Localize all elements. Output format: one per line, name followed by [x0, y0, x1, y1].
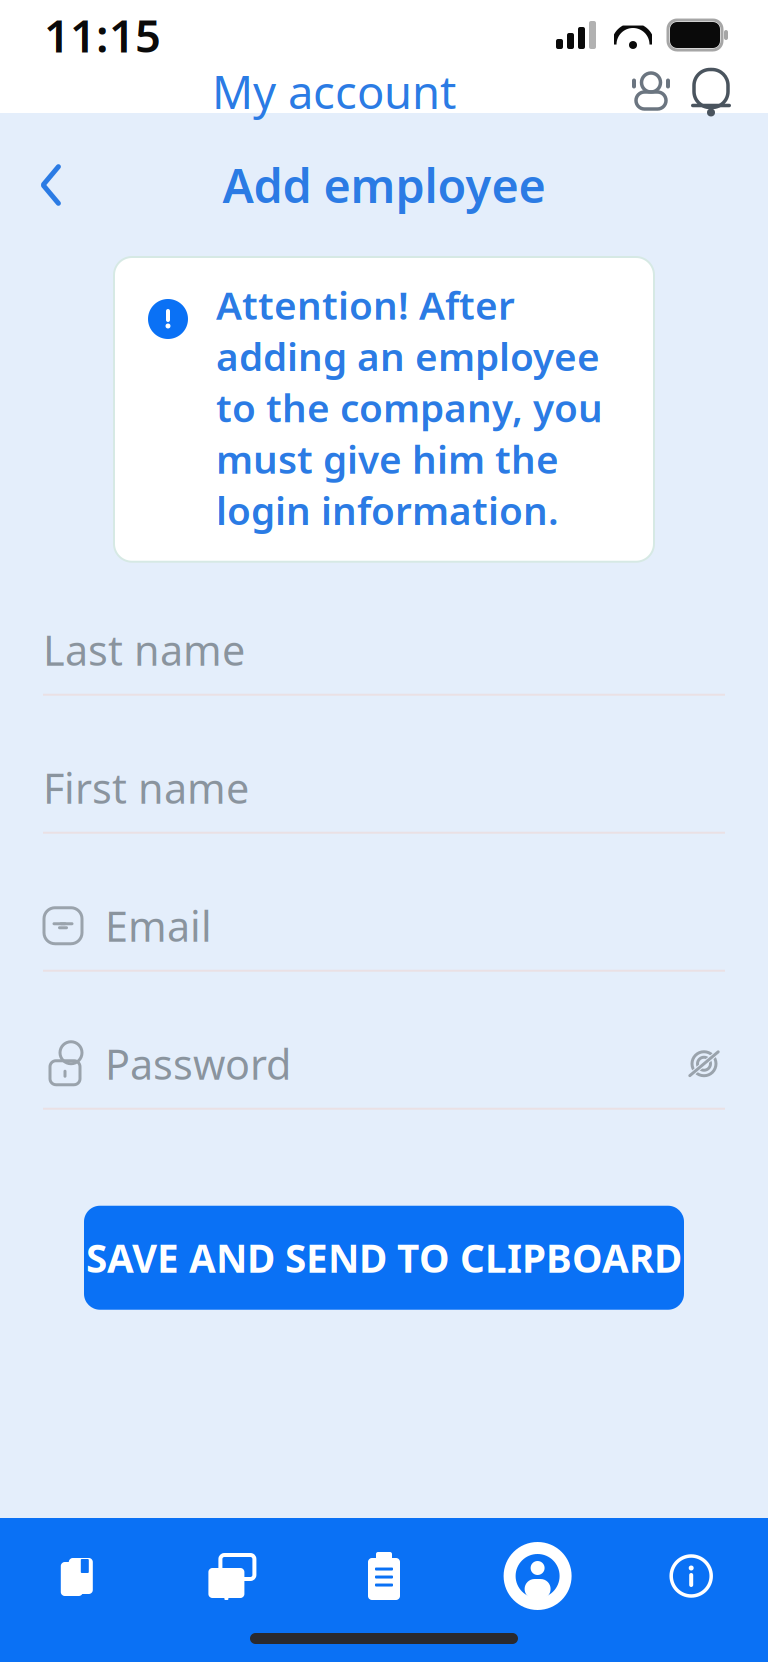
staticText: My account: [212, 61, 456, 122]
button[interactable]: Back: [18, 152, 84, 218]
staticText: 11:15: [44, 5, 161, 65]
staticText: Last name: [43, 622, 245, 677]
button[interactable]: Contacts: [628, 68, 674, 114]
button[interactable]: Tasks: [307, 1551, 461, 1601]
button[interactable]: Last name: [0, 606, 768, 696]
staticText: Attention! After adding an employee to t…: [216, 279, 603, 536]
staticText: Email: [105, 898, 212, 953]
staticText: Password: [105, 1036, 291, 1091]
button[interactable]: Password: [0, 1020, 768, 1110]
button[interactable]: Information: [614, 1551, 768, 1601]
staticText: First name: [43, 760, 249, 815]
button[interactable]: Email: [0, 882, 768, 972]
button[interactable]: First name: [0, 744, 768, 834]
button[interactable]: Library: [0, 1553, 154, 1599]
staticText: Add employee: [222, 154, 545, 216]
button[interactable]: SAVE AND SEND TO CLIPBOARD: [84, 1206, 684, 1310]
staticText: SAVE AND SEND TO CLIPBOARD: [86, 1232, 682, 1283]
button[interactable]: Notifications: [688, 65, 734, 117]
button[interactable]: My account: [461, 1536, 614, 1616]
button[interactable]: Devices: [154, 1551, 307, 1601]
